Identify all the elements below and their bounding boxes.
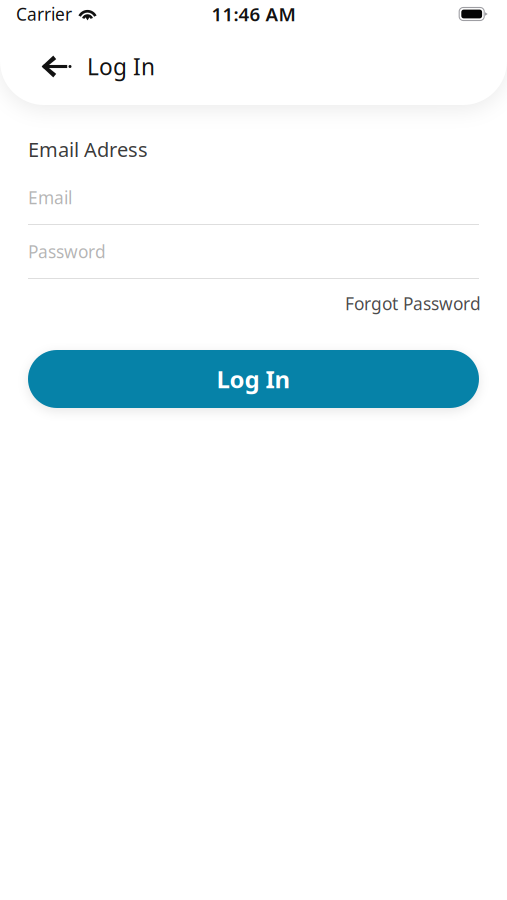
staticText: Forgot Password <box>345 292 481 315</box>
button[interactable]: Password <box>28 237 479 279</box>
button[interactable]: Back <box>0 28 175 105</box>
staticText: Carrier <box>16 2 72 25</box>
button[interactable]: Email <box>28 183 479 225</box>
staticText: Log In <box>87 51 155 81</box>
staticText: Email Adress <box>28 136 148 163</box>
button[interactable]: Log In <box>28 350 479 408</box>
staticText: Email <box>28 186 72 209</box>
staticText: Log In <box>216 363 290 395</box>
button[interactable]: Forgot Password <box>333 285 479 322</box>
staticText: Password <box>28 240 106 263</box>
staticText: 11:46 AM <box>211 2 295 26</box>
